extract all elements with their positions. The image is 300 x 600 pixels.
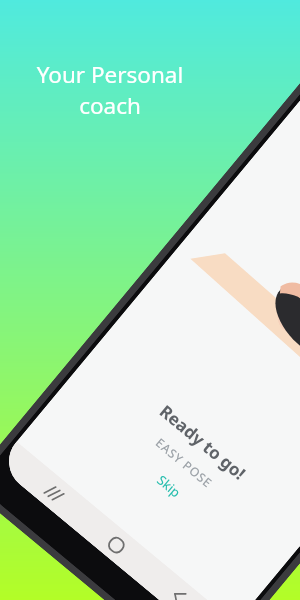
staticText: Your Personal coach xyxy=(20,59,200,121)
button[interactable]: Recent apps xyxy=(37,476,71,510)
button[interactable]: Back xyxy=(162,580,196,600)
button[interactable]: Skip xyxy=(144,462,194,510)
staticText: Ready to go! xyxy=(86,342,300,541)
staticText: Skip xyxy=(153,471,185,501)
button[interactable]: Home xyxy=(99,528,133,562)
staticText: EASY POSE xyxy=(70,365,299,560)
